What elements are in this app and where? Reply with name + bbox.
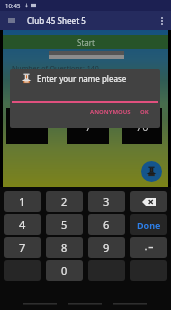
button[interactable]: 0 [46,260,83,281]
button[interactable]: 2 [46,191,83,212]
staticText: 5 [61,217,68,232]
button[interactable]: Done [130,214,167,235]
button[interactable]: 7 [67,108,109,144]
button[interactable]: 70 [122,108,162,144]
staticText: 10:45 [5,2,21,10]
button[interactable]: Backspace [130,191,167,212]
button[interactable]: 1 [4,191,41,212]
button[interactable]: 9 [88,237,125,258]
staticText: 1 [19,194,26,209]
staticText: 4 [19,217,26,232]
button[interactable]: Navigate up [5,14,18,27]
staticText: 9 [103,240,110,255]
button[interactable]: 3 [88,191,125,212]
staticText: 7 [19,240,26,255]
staticText: Done [137,219,161,231]
button[interactable]: 8 [46,237,83,258]
button[interactable]: 7 [4,237,41,258]
button[interactable]: 5 [46,214,83,235]
button[interactable]: 4 [4,214,41,235]
button[interactable]: Start [3,35,168,49]
staticText: 6 [103,217,110,232]
staticText: 3 [103,194,110,209]
button[interactable]: Comma and dash [130,237,167,258]
staticText: ANONYMOUS [90,108,131,116]
button[interactable] [6,108,48,144]
staticText: 7 [85,119,92,134]
staticText: Club 45 Sheet 5 [27,15,86,26]
staticText: 70 [136,119,149,134]
button[interactable]: ANONYMOUS [88,106,133,118]
staticText: 2 [61,194,68,209]
button[interactable]: Add entry [141,161,162,182]
button[interactable]: More options [155,14,169,28]
button[interactable]: 6 [88,214,125,235]
staticText: Number of Questions: 140 [12,64,99,74]
staticText: Start [77,37,95,48]
staticText: 8 [61,240,68,255]
staticText: Enter your name please [37,73,127,84]
staticText: OK [140,108,149,116]
button[interactable]: OK [138,106,151,118]
staticText: 0 [61,263,68,278]
